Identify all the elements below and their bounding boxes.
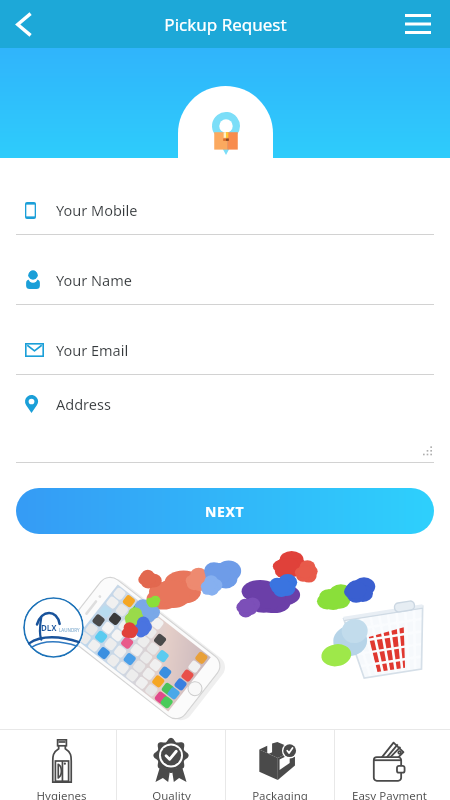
staticText: Pickup Request: [164, 13, 287, 36]
staticText: Packaging: [252, 788, 308, 800]
button[interactable]: Quality: [117, 730, 225, 800]
button[interactable]: NEXT: [16, 488, 434, 534]
button[interactable]: Packaging: [226, 730, 334, 800]
button[interactable]: Hygienes: [7, 730, 116, 800]
staticText: Quality: [152, 788, 191, 800]
staticText: Easy Payment: [352, 788, 427, 800]
staticText: Address: [56, 394, 111, 414]
button[interactable]: Your Name: [0, 235, 450, 305]
staticText: Your Name: [56, 270, 132, 290]
button[interactable]: Menu: [402, 0, 450, 48]
button[interactable]: Easy Payment: [335, 730, 443, 800]
button[interactable]: Your Mobile: [0, 158, 450, 235]
staticText: LAUNDRY: [59, 627, 80, 633]
staticText: Hygienes: [36, 788, 87, 800]
staticText: DLX: [41, 622, 57, 633]
staticText: Your Email: [56, 340, 129, 360]
button[interactable]: Address: [0, 375, 450, 463]
staticText: Your Mobile: [56, 200, 138, 220]
button[interactable]: Your Email: [0, 305, 450, 375]
staticText: NEXT: [205, 502, 245, 521]
button[interactable]: Back: [0, 0, 48, 48]
